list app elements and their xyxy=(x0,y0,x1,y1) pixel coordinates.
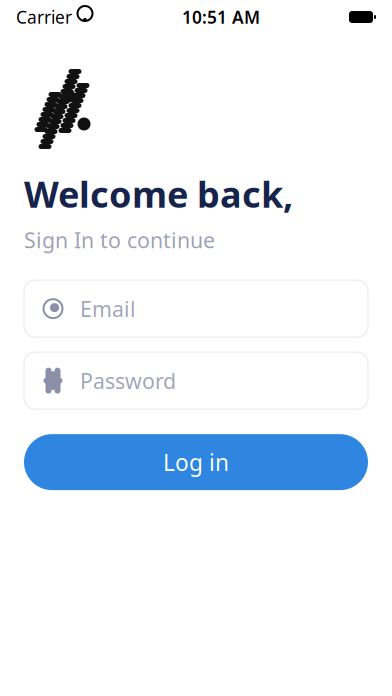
staticText: Password xyxy=(80,366,176,395)
staticText: Email xyxy=(80,294,136,323)
button[interactable]: Email xyxy=(24,280,368,337)
staticText: Carrier xyxy=(16,5,72,28)
staticText: Log in xyxy=(163,447,229,477)
staticText: Welcome back, xyxy=(24,170,293,218)
staticText: Sign In to continue xyxy=(24,226,215,254)
button[interactable]: Log in xyxy=(24,434,368,490)
staticText: 10:51 AM xyxy=(182,5,260,28)
button[interactable]: Password xyxy=(24,352,368,409)
